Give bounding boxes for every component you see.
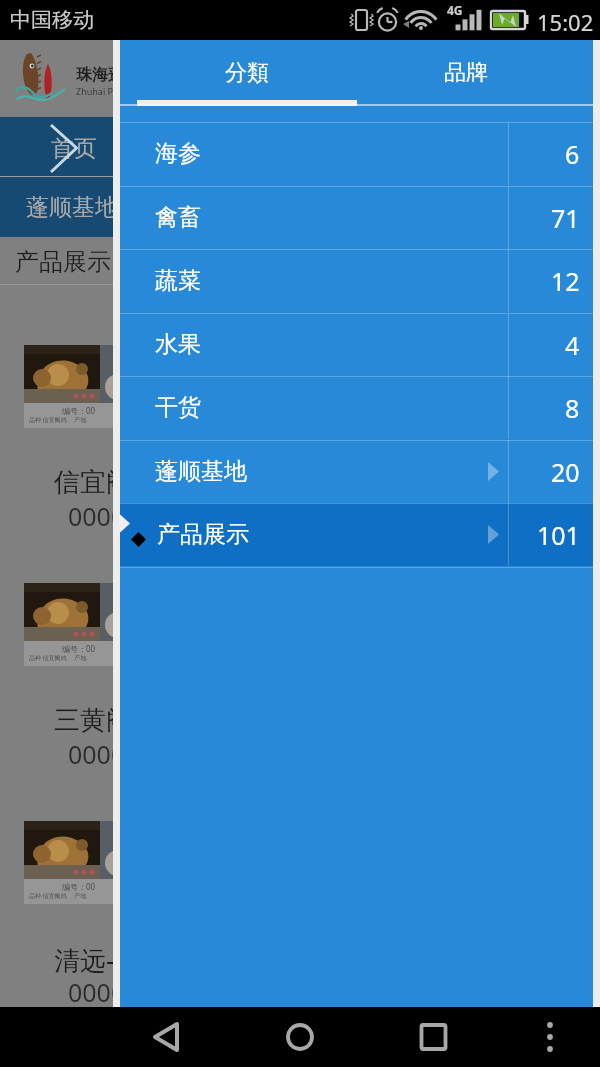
staticText: 20 (551, 455, 580, 489)
button[interactable]: More options (515, 1007, 585, 1067)
staticText: 水果 (155, 330, 201, 359)
staticText: 15:02 (537, 7, 594, 37)
staticText: Zhuhai Pengshun (76, 85, 151, 97)
staticText: 101 (537, 518, 580, 552)
staticText: 编号：00 (62, 881, 96, 892)
staticText: 蔬菜 (155, 266, 201, 295)
staticText: 品种 信宜阉鸡 产地 (29, 416, 87, 424)
staticText: 0000 (68, 499, 126, 533)
staticText: 4G (447, 2, 463, 18)
staticText: 珠海蓬顺农业 (76, 65, 172, 85)
staticText: 71 (551, 201, 580, 235)
staticText: 编号：00 (62, 643, 96, 654)
button[interactable]: Recent apps (388, 1007, 478, 1067)
staticText: 干货 (155, 393, 201, 422)
button[interactable]: 分類 (138, 40, 356, 106)
staticText: 清远-清 (54, 942, 141, 978)
button[interactable]: 干货 (120, 376, 593, 439)
staticText: 0000 (68, 975, 126, 1009)
staticText: 首页 (51, 134, 97, 163)
staticText: 信宜阉 (54, 466, 132, 499)
staticText: 品牌 (444, 59, 488, 87)
button[interactable]: Home (255, 1007, 345, 1067)
button[interactable]: 海参 (120, 122, 593, 185)
button[interactable]: Back (120, 1007, 215, 1067)
staticText: 品种 信宜阉鸡 产地 (29, 892, 87, 900)
button[interactable]: 编号：00 (24, 821, 120, 904)
staticText: 中国移动 (10, 7, 94, 33)
button[interactable]: 禽畜 (120, 186, 593, 249)
staticText: 蓬顺基地 (155, 457, 247, 486)
button[interactable]: 水果 (120, 313, 593, 376)
staticText: 海参 (155, 139, 201, 168)
staticText: 三黄阉 (54, 704, 132, 737)
button[interactable]: 蔬菜 (120, 249, 593, 312)
staticText: 品种 信宜阉鸡 产地 (29, 654, 87, 662)
staticText: 产品展示 (15, 247, 111, 277)
staticText: 12 (551, 264, 580, 298)
staticText: 禽畜 (155, 203, 201, 232)
staticText: 4 (565, 328, 580, 362)
staticText: 编号：00 (62, 405, 96, 416)
button[interactable]: 编号：00 (24, 345, 120, 428)
staticText: 分類 (225, 59, 269, 87)
staticText: 蓬顺基地 (26, 193, 118, 222)
staticText: 产品展示 (157, 520, 249, 549)
button[interactable]: 蓬顺基地 (120, 440, 593, 503)
button[interactable]: 产品展示 (120, 503, 593, 566)
button[interactable]: 品牌 (356, 40, 575, 106)
staticText: 8 (565, 391, 580, 425)
button[interactable]: 编号：00 (24, 583, 120, 666)
staticText: 6 (565, 137, 580, 171)
staticText: 0000 (68, 737, 126, 771)
